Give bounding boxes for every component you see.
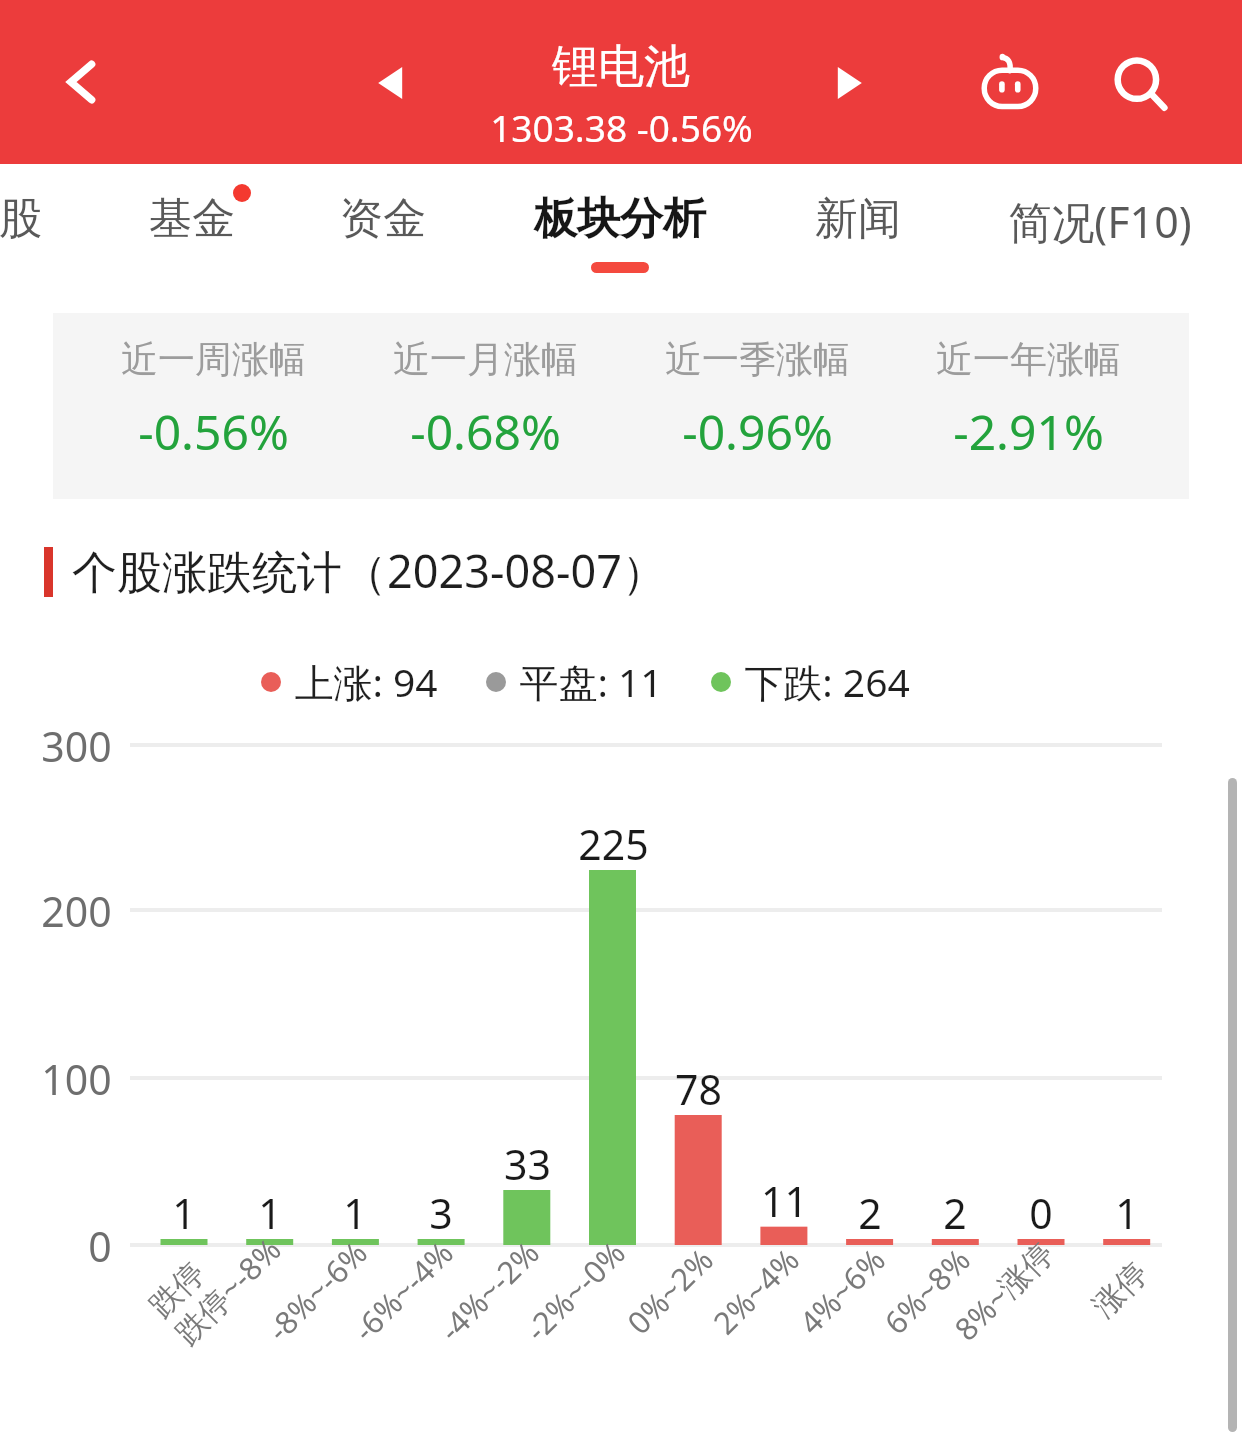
button[interactable]: 股 (0, 170, 140, 296)
button[interactable]: 资金 (263, 170, 503, 296)
staticText: 涨停 (1084, 1254, 1156, 1325)
button[interactable]: 近一季涨幅 (597, 336, 917, 464)
staticText: 225 (578, 816, 649, 872)
button[interactable]: 简况(F10) (980, 170, 1220, 296)
staticText: 1303.38 -0.56% (490, 102, 753, 152)
staticText: 板块分析 (534, 192, 706, 246)
staticText: 100 (41, 1051, 112, 1107)
button[interactable]: Back (36, 36, 128, 128)
staticText: 锂电池 (552, 38, 690, 96)
staticText: 6%~8% (874, 1239, 978, 1343)
button[interactable]: 基金 (72, 170, 312, 296)
staticText: -2.91% (953, 399, 1104, 464)
staticText: -0.56% (138, 399, 289, 464)
staticText: 个股涨跌统计（2023-08-07） (72, 540, 667, 601)
staticText: 200 (41, 883, 112, 939)
staticText: 跌停~-8% (165, 1229, 289, 1353)
staticText: 股 (0, 192, 42, 246)
staticText: 8%~涨停 (944, 1232, 1062, 1350)
staticText: 4%~6% (789, 1239, 893, 1343)
staticText: 下跌: 264 (744, 655, 910, 708)
staticText: 上涨: 94 (294, 655, 438, 708)
staticText: 近一季涨幅 (665, 336, 850, 383)
staticText: 1 (172, 1185, 196, 1241)
staticText: 1 (258, 1185, 282, 1241)
staticText: -8%~-6% (257, 1232, 376, 1350)
button[interactable]: 近一年涨幅 (868, 336, 1188, 464)
button[interactable]: 上涨: 94 (261, 655, 438, 708)
staticText: 300 (41, 718, 112, 774)
staticText: 2 (943, 1185, 967, 1241)
staticText: -0.68% (410, 399, 561, 464)
staticText: 近一月涨幅 (393, 336, 578, 383)
staticText: -4%~-2% (429, 1232, 548, 1350)
button[interactable]: AI assistant (962, 36, 1058, 132)
staticText: 2%~4% (703, 1239, 807, 1343)
staticText: -2%~-0% (515, 1232, 634, 1350)
staticText: 3 (429, 1185, 453, 1241)
button[interactable]: Previous sector (350, 42, 432, 124)
staticText: 基金 (149, 192, 235, 246)
staticText: 0 (88, 1218, 112, 1274)
staticText: 1 (343, 1185, 367, 1241)
staticText: -0.96% (682, 399, 833, 464)
button[interactable]: 近一周涨幅 (53, 336, 373, 464)
staticText: 2 (858, 1185, 882, 1241)
button[interactable]: 近一月涨幅 (325, 336, 645, 464)
button[interactable]: 新闻 (738, 170, 978, 296)
staticText: 近一年涨幅 (936, 336, 1121, 383)
staticText: 0%~2% (617, 1239, 721, 1343)
staticText: 11 (761, 1173, 808, 1229)
staticText: 1 (1115, 1185, 1139, 1241)
button[interactable]: 平盘: 11 (486, 655, 663, 708)
staticText: 近一周涨幅 (121, 336, 306, 383)
button[interactable]: 下跌: 264 (711, 655, 910, 708)
button[interactable]: Search (1094, 38, 1190, 134)
staticText: 0 (1029, 1185, 1053, 1241)
staticText: 平盘: 11 (519, 655, 663, 708)
staticText: -6%~-4% (343, 1232, 462, 1350)
staticText: 新闻 (815, 192, 901, 246)
staticText: 跌停 (141, 1254, 213, 1325)
staticText: 33 (504, 1136, 551, 1192)
staticText: 简况(F10) (1008, 192, 1192, 251)
staticText: 78 (675, 1061, 722, 1117)
button[interactable]: Next sector (808, 42, 890, 124)
button[interactable]: 板块分析 (500, 170, 740, 296)
staticText: 资金 (340, 192, 426, 246)
